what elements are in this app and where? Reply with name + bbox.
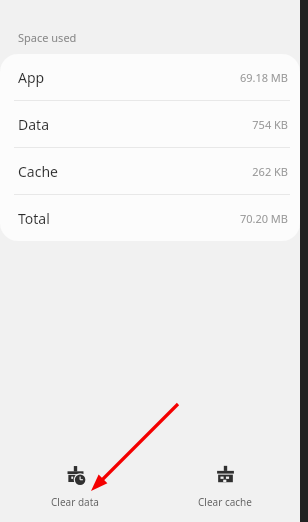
button[interactable]: App xyxy=(0,54,300,100)
staticText: 754 KB xyxy=(252,117,288,132)
staticText: Clear data xyxy=(51,495,99,509)
other: Clear data xyxy=(65,465,86,486)
staticText: Cache xyxy=(18,162,58,181)
staticText: 69.18 MB xyxy=(239,70,288,85)
staticText: Clear cache xyxy=(198,495,252,509)
button[interactable]: Total xyxy=(0,195,300,241)
button[interactable]: Cache xyxy=(0,148,300,194)
staticText: Data xyxy=(18,115,49,134)
staticText: 70.20 MB xyxy=(239,211,288,226)
button[interactable]: Data xyxy=(0,101,300,147)
staticText: Space used xyxy=(18,30,77,45)
other: Clear cache xyxy=(215,465,236,486)
staticText: Total xyxy=(18,209,50,228)
button[interactable]: Clear data xyxy=(0,459,150,515)
staticText: 262 KB xyxy=(252,164,288,179)
button[interactable]: Clear cache xyxy=(150,459,300,515)
staticText: App xyxy=(18,68,45,87)
